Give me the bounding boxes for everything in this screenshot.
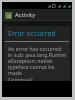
staticText: Activity: [15, 11, 36, 19]
staticText: Continue?: [8, 76, 33, 83]
staticText: Error occurred: [8, 29, 56, 39]
staticText: An error has occurred in sub: java.lang.…: [8, 45, 67, 76]
staticText: Text: [6, 23, 16, 30]
